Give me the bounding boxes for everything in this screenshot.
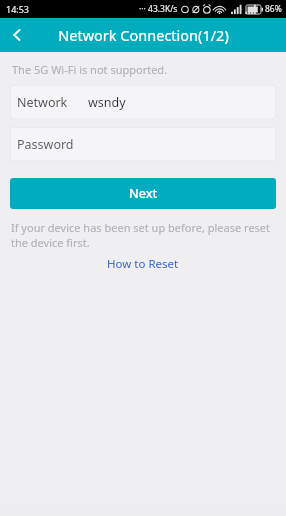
staticText: Next [129, 185, 158, 202]
staticText: If your device has been set up before, p… [11, 220, 272, 250]
staticText: wsndy [88, 94, 126, 111]
staticText: Password [17, 136, 74, 153]
staticText: 14:53 [6, 3, 30, 15]
button[interactable]: Network [10, 85, 276, 119]
staticText: ··· 43.3K/s [139, 3, 178, 15]
staticText: Network Connection(1/2) [58, 25, 229, 45]
staticText: 86% [265, 3, 282, 15]
button[interactable]: Next [10, 178, 276, 209]
staticText: Network [17, 94, 68, 111]
button[interactable]: Password [10, 127, 276, 161]
staticText: How to Reset [107, 256, 179, 272]
staticText: The 5G Wi-Fi is not supported. [12, 62, 168, 77]
button[interactable]: How to Reset [101, 254, 185, 274]
button[interactable]: Back [0, 18, 34, 52]
